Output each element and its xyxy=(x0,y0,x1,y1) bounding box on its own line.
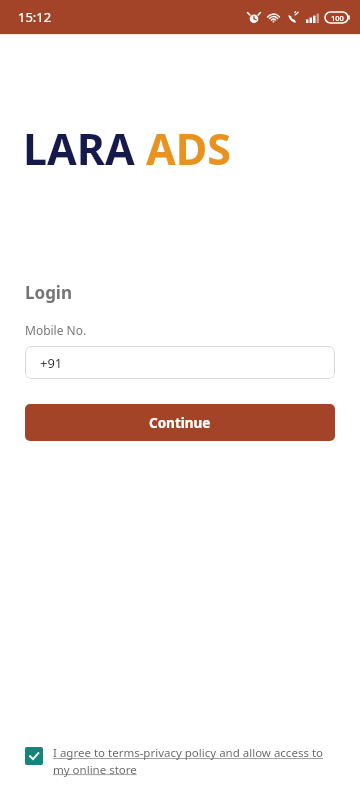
other: I agree checkbox, checked xyxy=(25,747,43,765)
staticText: Login xyxy=(25,281,73,304)
staticText: Continue xyxy=(149,414,211,432)
button[interactable]: +91 xyxy=(25,346,335,379)
staticText: +91 xyxy=(40,354,63,372)
staticText: Mobile No. xyxy=(25,322,87,338)
button[interactable]: I agree checkbox, checked xyxy=(25,745,342,777)
staticText: 15:12 xyxy=(18,8,52,26)
staticText: 100 xyxy=(331,13,344,23)
staticText: LARA ADS xyxy=(23,119,231,178)
staticText: I agree to terms-privacy policy and allo… xyxy=(53,745,342,777)
button[interactable]: Continue xyxy=(25,404,335,441)
